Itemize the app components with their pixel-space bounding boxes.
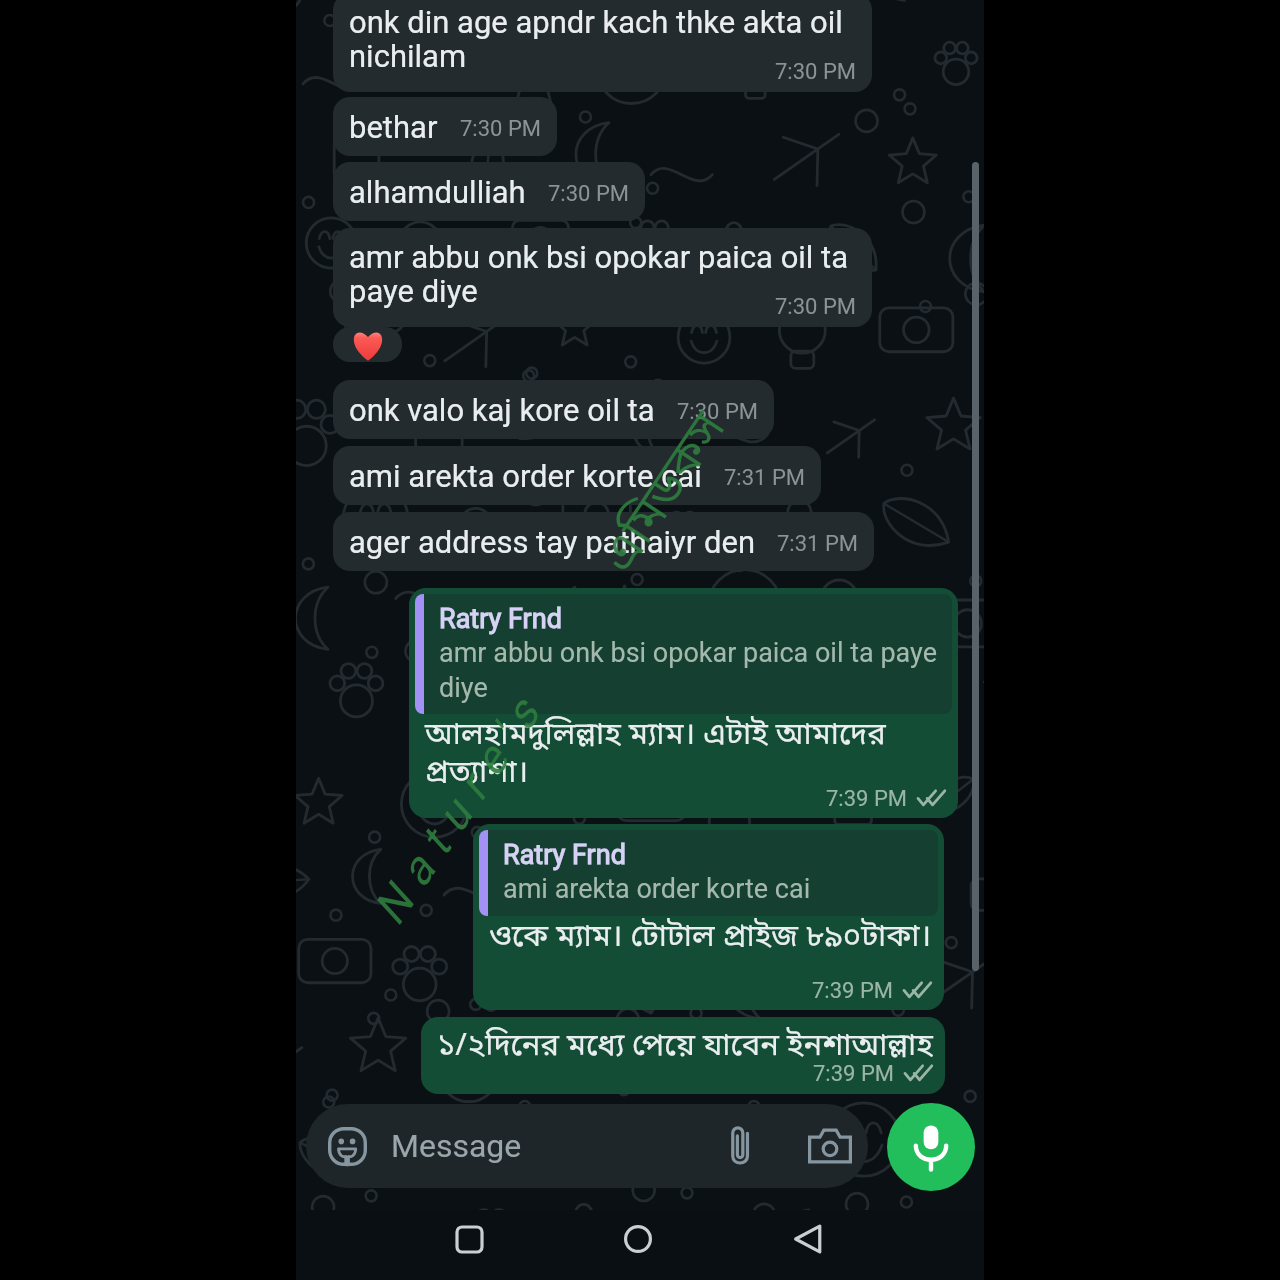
staticText: Ratry Frnd	[439, 603, 562, 635]
button[interactable]: Voice message	[887, 1103, 975, 1191]
staticText: 7:30 PM	[775, 294, 856, 320]
button[interactable]: ami arekta order korte cai	[333, 446, 821, 505]
button[interactable]: Message	[306, 1104, 868, 1188]
staticText: Ratry Frnd	[503, 839, 626, 871]
staticText: 7:30 PM	[775, 59, 856, 85]
staticText: ওকে ম্যাম। টোটাল প্রাইজ ৮৯০টাকা।	[489, 918, 932, 959]
button[interactable]: alhamdulliah	[333, 162, 645, 221]
button[interactable]: ager address tay pathaiyr den	[333, 512, 874, 571]
staticText: আলহামদুলিল্লাহ ম্যাম। এটাই আমাদের প্রত্য…	[425, 716, 946, 795]
staticText: 7:30 PM	[460, 116, 541, 142]
staticText: 7:30 PM	[677, 399, 758, 425]
button[interactable]: amr abbu onk bsi opokar paica oil ta pay…	[333, 228, 872, 327]
staticText: 7:39 PM	[812, 978, 893, 1004]
button[interactable]: onk din age apndr kach thke akta oil nic…	[333, 0, 872, 92]
staticText: onk din age apndr kach thke akta oil nic…	[349, 4, 856, 74]
staticText: ager address tay pathaiyr den	[349, 524, 755, 560]
staticText: Message	[391, 1127, 522, 1165]
button[interactable]: Red heart emoji message	[333, 327, 402, 362]
staticText: 7:39 PM	[813, 1061, 894, 1087]
button[interactable]: bethar	[333, 97, 557, 156]
button[interactable]: Home	[609, 1210, 667, 1268]
staticText: ami arekta order korte cai	[503, 873, 811, 905]
staticText: 7:31 PM	[777, 531, 858, 557]
staticText: onk valo kaj kore oil ta	[349, 392, 655, 428]
button[interactable]: Ratry Frnd	[409, 588, 958, 818]
button[interactable]: Ratry Frnd	[473, 824, 944, 1010]
button[interactable]: Back	[779, 1210, 837, 1268]
staticText: ami arekta order korte cai	[349, 458, 702, 494]
staticText: 7:30 PM	[548, 181, 629, 207]
button[interactable]: ১/২দিনের মধ্যে পেয়ে যাবেন ইনশাআল্লাহ	[421, 1017, 945, 1094]
staticText: alhamdulliah	[349, 174, 526, 210]
button[interactable]: Camera	[802, 1118, 858, 1174]
staticText: 7:39 PM	[826, 786, 907, 812]
staticText: bethar	[349, 109, 438, 145]
staticText: amr abbu onk bsi opokar paica oil ta pay…	[439, 637, 942, 703]
staticText: ১/২দিনের মধ্যে পেয়ে যাবেন ইনশাআল্লাহ	[437, 1027, 933, 1068]
button[interactable]: Recents	[440, 1210, 498, 1268]
button[interactable]: Attach	[714, 1118, 770, 1174]
staticText: 7:31 PM	[724, 465, 805, 491]
button[interactable]: onk valo kaj kore oil ta	[333, 380, 774, 439]
staticText: amr abbu onk bsi opokar paica oil ta pay…	[349, 239, 856, 309]
